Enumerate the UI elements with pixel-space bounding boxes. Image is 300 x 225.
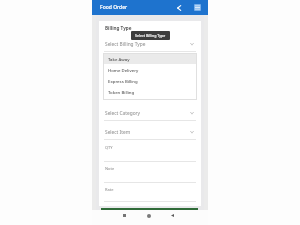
- button[interactable]: Select Billing Type: [131, 31, 170, 40]
- button[interactable]: Home: [144, 211, 153, 220]
- staticText: Rate: [105, 187, 114, 192]
- button[interactable]: Express Billing: [103, 75, 197, 86]
- staticText: Select Billing Type: [135, 33, 166, 38]
- staticText: Take Away: [108, 56, 130, 62]
- button[interactable]: Take Away: [103, 53, 197, 64]
- staticText: Note: [105, 166, 115, 171]
- button[interactable]: Back: [168, 211, 177, 220]
- staticText: Billing Type: [105, 25, 132, 31]
- button[interactable]: Recents: [120, 211, 129, 220]
- staticText: Token Billing: [108, 89, 135, 95]
- button[interactable]: Token Billing: [103, 86, 197, 97]
- button[interactable]: Back: [172, 0, 185, 15]
- button[interactable]: Home Delivery: [103, 64, 197, 75]
- staticText: Select Item: [105, 129, 131, 136]
- staticText: QTY: [105, 145, 113, 150]
- button[interactable]: Select Billing Type: [104, 39, 196, 51]
- button[interactable]: Menu: [191, 0, 204, 15]
- staticText: Select Billing Type: [105, 41, 146, 48]
- staticText: Select Category: [105, 110, 141, 117]
- staticText: Home Delivery: [108, 67, 139, 73]
- button[interactable]: Select Category: [104, 108, 196, 120]
- button[interactable]: Select Item: [104, 127, 196, 139]
- staticText: Express Billing: [108, 78, 138, 84]
- staticText: Food Order: [100, 4, 128, 11]
